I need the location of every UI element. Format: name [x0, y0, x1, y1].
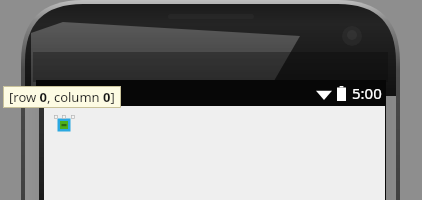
button[interactable]: Selected image widget	[53, 114, 75, 136]
button[interactable]: [row 0, column 0]	[9, 88, 115, 106]
staticText: 5:00	[352, 83, 382, 103]
staticText: [row 0, column 0]	[9, 88, 115, 106]
